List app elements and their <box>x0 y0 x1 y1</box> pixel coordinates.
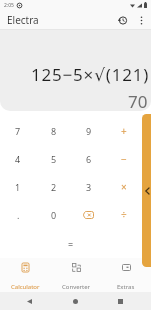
staticText: 2 <box>51 181 57 193</box>
button[interactable]: 7 <box>0 117 36 145</box>
button[interactable]: Extras <box>101 258 151 292</box>
staticText: 4 <box>15 153 21 165</box>
staticText: Calculator <box>11 283 40 291</box>
button[interactable]: 2 <box>36 173 71 201</box>
button[interactable] <box>142 114 151 267</box>
button[interactable] <box>136 15 146 25</box>
staticText: − <box>121 152 127 166</box>
staticText: 2:05 <box>4 2 14 9</box>
staticText: 7 <box>15 125 21 137</box>
button[interactable]: 1 <box>0 173 36 201</box>
staticText: 70 <box>128 90 148 111</box>
button[interactable] <box>71 201 106 229</box>
button[interactable]: − <box>106 145 141 173</box>
staticText: Extras <box>117 283 135 291</box>
button[interactable]: Converter <box>51 258 101 292</box>
staticText: Electra <box>7 13 39 27</box>
button[interactable]: 3 <box>71 173 106 201</box>
staticText: × <box>121 180 127 194</box>
button[interactable]: + <box>106 117 141 145</box>
button[interactable]: = <box>0 230 141 258</box>
staticText: . <box>17 209 20 221</box>
button[interactable]: 8 <box>36 117 71 145</box>
button[interactable]: 0 <box>36 201 71 229</box>
button[interactable]: Calculator <box>0 258 51 292</box>
button[interactable]: × <box>106 173 141 201</box>
staticText: 125−5×√(121) <box>31 63 150 86</box>
staticText: 5 <box>51 153 57 165</box>
staticText: ÷ <box>121 208 127 222</box>
staticText: 6 <box>86 153 92 165</box>
staticText: 8 <box>51 125 57 137</box>
staticText: 1 <box>15 181 21 193</box>
staticText: 9 <box>86 125 92 137</box>
button[interactable]: ÷ <box>106 201 141 229</box>
staticText: 0 <box>51 209 57 221</box>
button[interactable]: 4 <box>0 145 36 173</box>
button[interactable]: 5 <box>36 145 71 173</box>
button[interactable]: 9 <box>71 117 106 145</box>
staticText: 3 <box>86 181 92 193</box>
staticText: = <box>68 238 74 250</box>
button[interactable]: 6 <box>71 145 106 173</box>
staticText: + <box>121 124 127 138</box>
button[interactable]: . <box>0 201 36 229</box>
button[interactable] <box>115 13 129 27</box>
staticText: Converter <box>62 283 91 291</box>
